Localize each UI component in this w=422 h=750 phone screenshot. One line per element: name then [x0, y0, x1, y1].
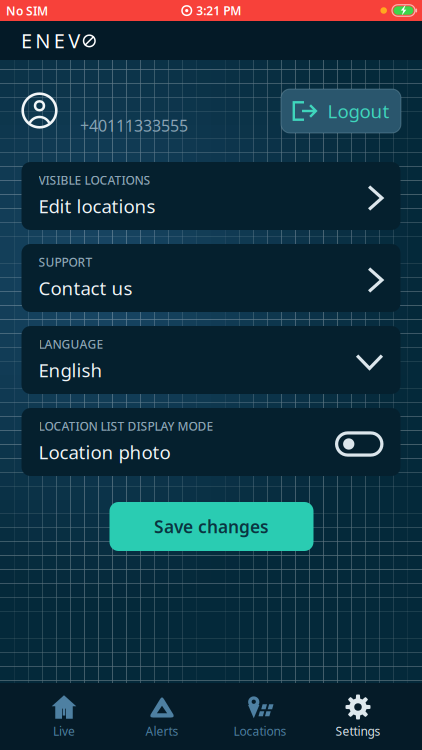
button[interactable]: Settings: [309, 683, 407, 750]
staticText: No SIM: [6, 3, 48, 19]
button[interactable]: VISIBLE LOCATIONS: [21, 162, 400, 230]
staticText: Alerts: [145, 723, 178, 739]
staticText: Save changes: [154, 515, 269, 538]
staticText: E: [54, 27, 65, 54]
staticText: Live: [53, 723, 75, 739]
staticText: V: [68, 27, 80, 54]
staticText: N: [35, 27, 50, 54]
button[interactable]: Live: [15, 683, 113, 750]
staticText: VISIBLE LOCATIONS: [38, 172, 150, 188]
staticText: Location photo: [38, 440, 170, 464]
button[interactable]: SUPPORT: [21, 244, 400, 312]
staticText: Edit locations: [38, 194, 155, 218]
staticText: English: [38, 358, 102, 382]
button[interactable]: Save changes: [109, 502, 313, 551]
staticText: Locations: [233, 723, 286, 739]
staticText: Contact us: [38, 276, 132, 300]
staticText: Logout: [327, 99, 389, 123]
button[interactable]: Locations: [211, 683, 309, 750]
button[interactable]: Alerts: [113, 683, 211, 750]
staticText: +40111333555: [80, 115, 188, 136]
button[interactable]: LANGUAGE: [21, 326, 400, 394]
button[interactable]: LOCATION LIST DISPLAY MODE: [21, 408, 400, 476]
staticText: LOCATION LIST DISPLAY MODE: [38, 418, 213, 434]
staticText: 3:21 PM: [196, 3, 241, 18]
button[interactable]: Logout: [281, 89, 401, 133]
staticText: E: [21, 27, 32, 54]
staticText: LANGUAGE: [38, 336, 103, 352]
staticText: Settings: [335, 723, 380, 739]
staticText: SUPPORT: [38, 254, 92, 270]
